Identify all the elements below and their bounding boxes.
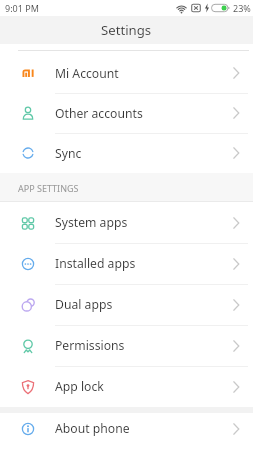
staticText: Sync: [55, 145, 82, 162]
button[interactable]: App lock: [0, 366, 253, 407]
staticText: 9:01 PM: [5, 2, 39, 14]
staticText: Permissions: [55, 337, 125, 354]
staticText: Dual apps: [55, 296, 113, 313]
staticText: Other accounts: [55, 105, 143, 122]
button[interactable]: Dual apps: [0, 284, 253, 325]
button[interactable]: About phone: [0, 413, 253, 444]
staticText: System apps: [55, 214, 128, 231]
button[interactable]: System apps: [0, 202, 253, 243]
staticText: 23%: [233, 2, 251, 14]
staticText: About phone: [55, 420, 130, 437]
button[interactable]: Permissions: [0, 325, 253, 366]
staticText: App lock: [55, 378, 104, 395]
staticText: APP SETTINGS: [18, 182, 79, 194]
staticText: Mi Account: [55, 65, 119, 82]
staticText: Settings: [101, 21, 152, 39]
button[interactable]: Mi Account: [0, 53, 253, 93]
button[interactable]: Sync: [0, 133, 253, 173]
staticText: Installed apps: [55, 255, 136, 272]
button[interactable]: Installed apps: [0, 243, 253, 284]
button[interactable]: Other accounts: [0, 93, 253, 133]
